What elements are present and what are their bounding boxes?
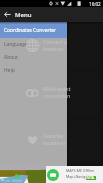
button[interactable]: About xyxy=(0,51,67,64)
button[interactable]: MAPS.ME Offline xyxy=(0,166,103,183)
button[interactable] xyxy=(3,121,100,163)
button[interactable] xyxy=(3,25,100,67)
staticText: Map+Navigation xyxy=(66,174,94,179)
staticText: About xyxy=(4,54,18,61)
staticText: Help xyxy=(4,67,15,74)
staticText: location xyxy=(43,45,63,52)
button[interactable]: Help xyxy=(0,64,67,77)
staticText: INSTALL xyxy=(86,176,96,180)
staticText: Convert a xyxy=(43,38,67,45)
button[interactable]: INSTALL xyxy=(86,176,96,180)
button[interactable] xyxy=(3,73,100,115)
staticText: MAPS.ME Offline xyxy=(66,168,95,173)
button[interactable]: Coordinates Converter xyxy=(0,22,67,38)
staticText: Multi-point xyxy=(43,85,71,92)
staticText: Language xyxy=(4,41,27,48)
button[interactable]: Back xyxy=(0,7,14,22)
staticText: Favorite xyxy=(43,132,64,139)
staticText: conversion xyxy=(43,92,71,99)
staticText: locations xyxy=(43,139,66,146)
button[interactable]: Language xyxy=(0,38,67,51)
staticText: Menu xyxy=(15,11,32,19)
staticText: 16:02 xyxy=(89,1,101,7)
staticText: Coordinates Converter xyxy=(4,27,56,34)
